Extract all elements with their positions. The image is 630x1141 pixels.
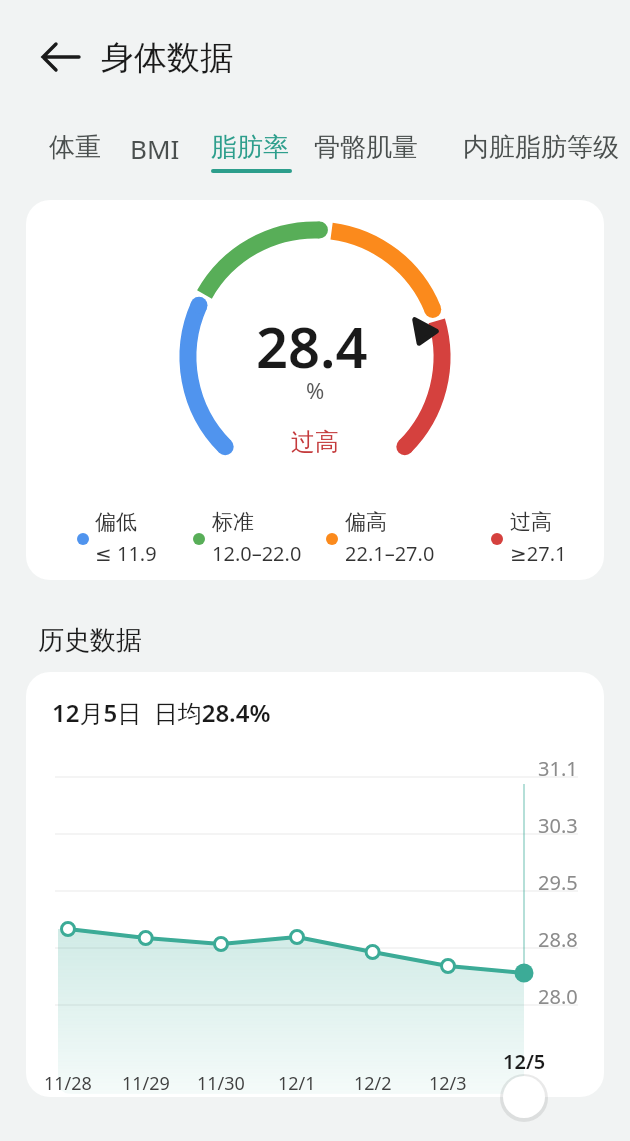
staticText: 11/28 — [44, 1071, 92, 1095]
staticText: 过高 — [291, 427, 339, 457]
staticText: 历史数据 — [38, 624, 142, 657]
staticText: 11/29 — [122, 1071, 170, 1095]
staticText: 11/30 — [197, 1071, 245, 1095]
staticText: 12.0–22.0 — [212, 540, 302, 567]
staticText: 身体数据 — [101, 37, 233, 79]
staticText: ≥27.1 — [510, 540, 567, 567]
staticText: 31.1 — [538, 755, 578, 779]
button[interactable] — [503, 1076, 545, 1118]
staticText: 标准 — [212, 509, 254, 535]
staticText: 偏高 — [345, 509, 387, 535]
staticText: 30.3 — [538, 812, 578, 836]
staticText: 22.1–27.0 — [345, 540, 435, 567]
staticText: 12月5日 日均28.4% — [52, 696, 271, 729]
staticText: 28.4 — [256, 308, 368, 384]
button[interactable] — [38, 42, 84, 72]
staticText: 过高 — [510, 509, 552, 535]
staticText: ≤ 11.9 — [95, 540, 157, 567]
staticText: 12/3 — [429, 1071, 467, 1095]
staticText: 12/5 — [503, 1048, 546, 1072]
staticText: 28.0 — [538, 983, 578, 1007]
staticText: 12/2 — [354, 1071, 392, 1095]
staticText: 偏低 — [95, 509, 137, 535]
staticText: 28.8 — [538, 926, 578, 950]
staticText: % — [306, 375, 325, 405]
staticText: 12/1 — [278, 1071, 316, 1095]
staticText: 29.5 — [538, 869, 578, 893]
